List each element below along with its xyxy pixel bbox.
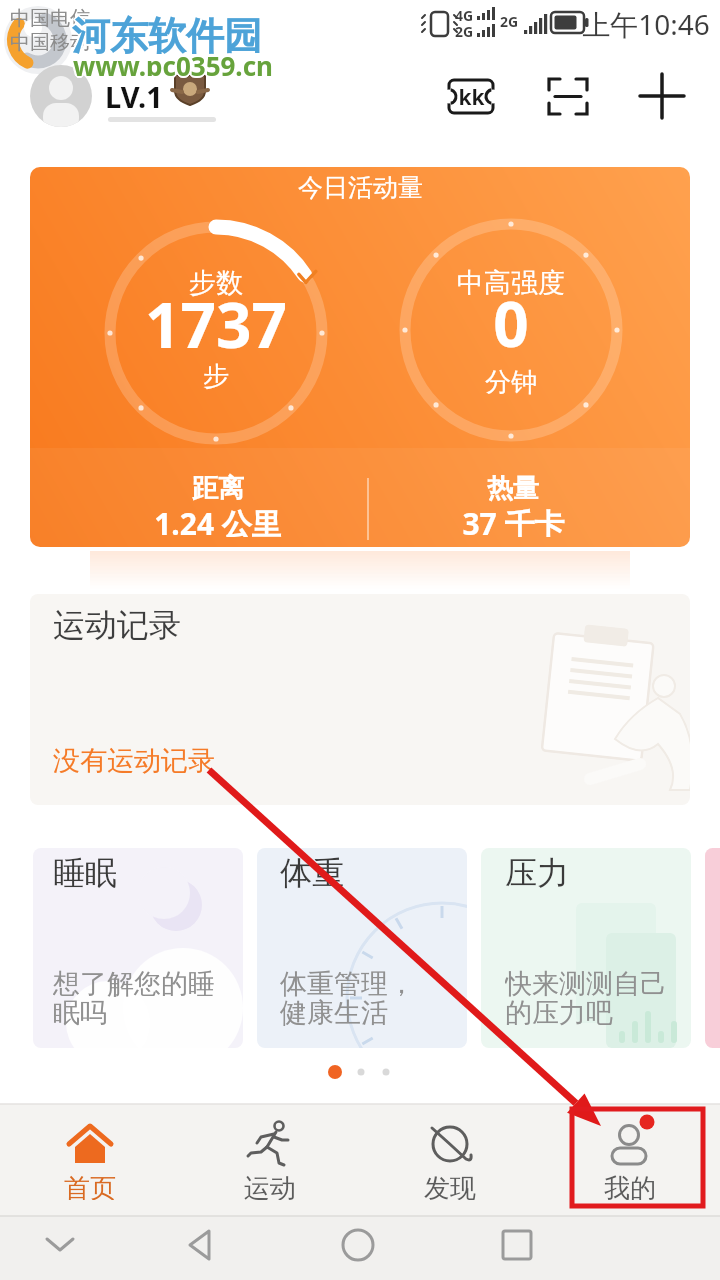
staticText: 压力: [505, 853, 569, 893]
staticText: www.pc0359.cn: [72, 49, 272, 77]
button[interactable]: [235, 1112, 305, 1207]
staticText: 运动记录: [53, 605, 181, 641]
button[interactable]: 运动: [0, 0, 80, 28]
button[interactable]: [0, 1216, 720, 1280]
staticText: 运动: [244, 1172, 296, 1200]
button[interactable]: [55, 1112, 125, 1207]
button[interactable]: 压力: [481, 848, 691, 1048]
staticText: 中国移动: [10, 30, 90, 54]
staticText: 眠吗: [53, 996, 107, 1028]
staticText: 2G: [455, 22, 474, 38]
staticText: 河东软件园: [73, 11, 263, 53]
staticText: 没有运动记录: [53, 744, 215, 776]
staticText: 步数: [189, 266, 243, 298]
staticText: 健康生活: [280, 996, 388, 1028]
button[interactable]: [415, 1112, 485, 1207]
button[interactable]: 睡眠: [33, 848, 243, 1048]
staticText: 发现: [424, 1172, 476, 1200]
staticText: 中国电信: [10, 6, 90, 30]
staticText: 河东软件园: [72, 10, 262, 52]
button[interactable]: [540, 70, 596, 122]
staticText: 河东软件园: [72, 12, 262, 54]
staticText: 0: [493, 281, 529, 365]
staticText: 我的: [604, 1172, 656, 1200]
staticText: 今日活动量: [298, 172, 423, 202]
button[interactable]: 我的: [0, 0, 80, 28]
staticText: LV.1: [105, 77, 163, 116]
staticText: 河东软件园: [72, 14, 262, 56]
staticText: 体重: [280, 853, 344, 893]
button[interactable]: [595, 1112, 665, 1207]
button[interactable]: 体重: [257, 848, 467, 1048]
staticText: 分钟: [485, 366, 537, 396]
staticText: www.pc0359.cn: [74, 49, 274, 77]
button[interactable]: [30, 167, 690, 547]
staticText: www.pc0359.cn: [71, 48, 271, 76]
staticText: 河东软件园: [70, 12, 260, 54]
staticText: 的压力吧: [505, 996, 613, 1028]
staticText: kk: [458, 83, 485, 112]
staticText: 2G: [500, 12, 519, 28]
staticText: 1737: [145, 282, 287, 366]
staticText: www.pc0359.cn: [73, 50, 273, 78]
staticText: www.pc0359.cn: [74, 47, 274, 75]
staticText: 4G: [455, 6, 474, 22]
staticText: 步: [203, 360, 229, 390]
button[interactable]: LV.1: [0, 0, 70, 44]
button[interactable]: 首页: [0, 0, 80, 28]
staticText: 1.24 公里: [154, 503, 282, 537]
staticText: 河东软件园: [74, 12, 264, 54]
button[interactable]: 发现: [0, 0, 80, 28]
staticText: 河东软件园: [71, 13, 261, 55]
staticText: 体重管理，: [280, 967, 415, 999]
staticText: www.pc0359.cn: [75, 48, 275, 76]
staticText: 河东软件园: [71, 11, 261, 53]
staticText: 中高强度: [457, 266, 565, 298]
button[interactable]: [440, 70, 502, 122]
staticText: 上午10:46: [582, 5, 710, 41]
button[interactable]: [634, 70, 690, 122]
staticText: 热量: [487, 472, 539, 502]
staticText: www.pc0359.cn: [73, 48, 273, 76]
staticText: 睡眠: [53, 853, 117, 893]
staticText: 河东软件园: [73, 13, 263, 55]
staticText: 37 千卡: [462, 503, 565, 537]
staticText: 快来测测自己: [505, 967, 667, 999]
staticText: 首页: [64, 1172, 116, 1200]
button[interactable]: [30, 65, 92, 127]
button[interactable]: [30, 594, 690, 805]
staticText: 想了解您的睡: [53, 967, 215, 999]
staticText: www.pc0359.cn: [73, 46, 273, 74]
staticText: 距离: [192, 472, 244, 502]
staticText: www.pc0359.cn: [72, 47, 272, 75]
